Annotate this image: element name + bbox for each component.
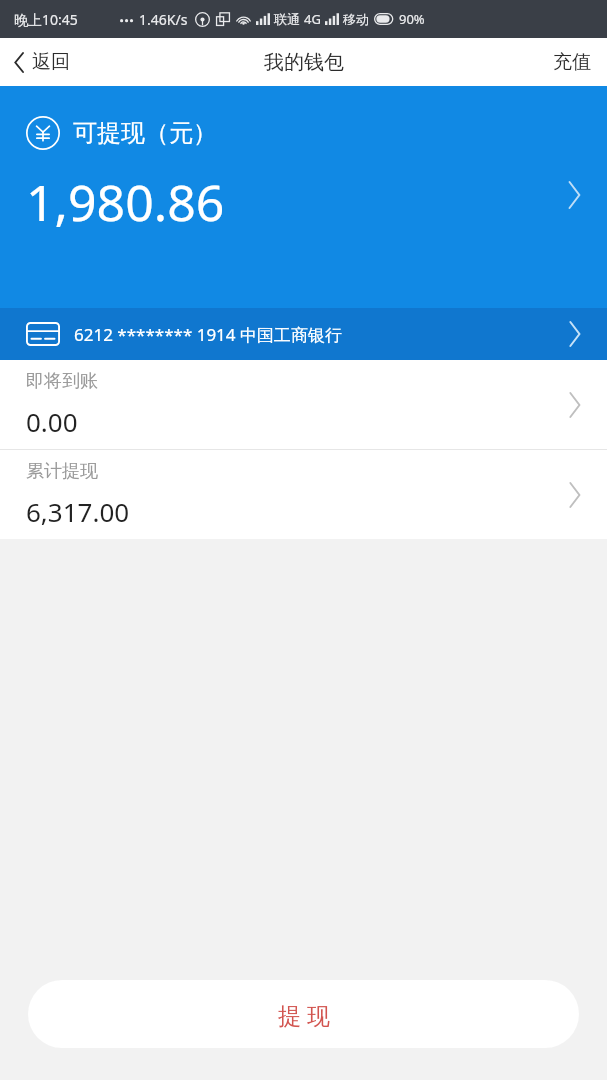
staticText: 90% xyxy=(399,10,425,28)
button[interactable]: 返回 xyxy=(0,42,86,82)
staticText: 6212 ******** 1914 中国工商银行 xyxy=(74,323,342,346)
staticText: 联通 xyxy=(274,11,300,27)
staticText: 充值 xyxy=(553,50,591,74)
staticText: 提 现 xyxy=(278,999,330,1030)
button[interactable]: 累计提现 xyxy=(0,450,607,539)
staticText: 可提现（元） xyxy=(73,118,217,148)
staticText: 即将到账 xyxy=(26,370,98,393)
button[interactable]: 可提现（元） xyxy=(0,86,607,308)
staticText: 移动 xyxy=(343,11,369,27)
staticText: 累计提现 xyxy=(26,460,98,483)
staticText: 0.00 xyxy=(26,404,78,439)
staticText: 1,980.86 xyxy=(26,168,225,236)
button[interactable]: 即将到账 xyxy=(0,360,607,449)
button[interactable]: 提 现 xyxy=(28,980,579,1048)
staticText: 我的钱包 xyxy=(264,50,344,75)
button[interactable]: 6212 ******** 1914 中国工商银行 xyxy=(0,308,607,360)
staticText: 晚上10:45 xyxy=(14,10,78,29)
button[interactable]: 充值 xyxy=(537,40,607,84)
staticText: 4G xyxy=(304,10,321,28)
staticText: 返回 xyxy=(32,50,70,74)
staticText: 1.46K/s xyxy=(139,10,188,29)
staticText: 6,317.00 xyxy=(26,494,130,529)
